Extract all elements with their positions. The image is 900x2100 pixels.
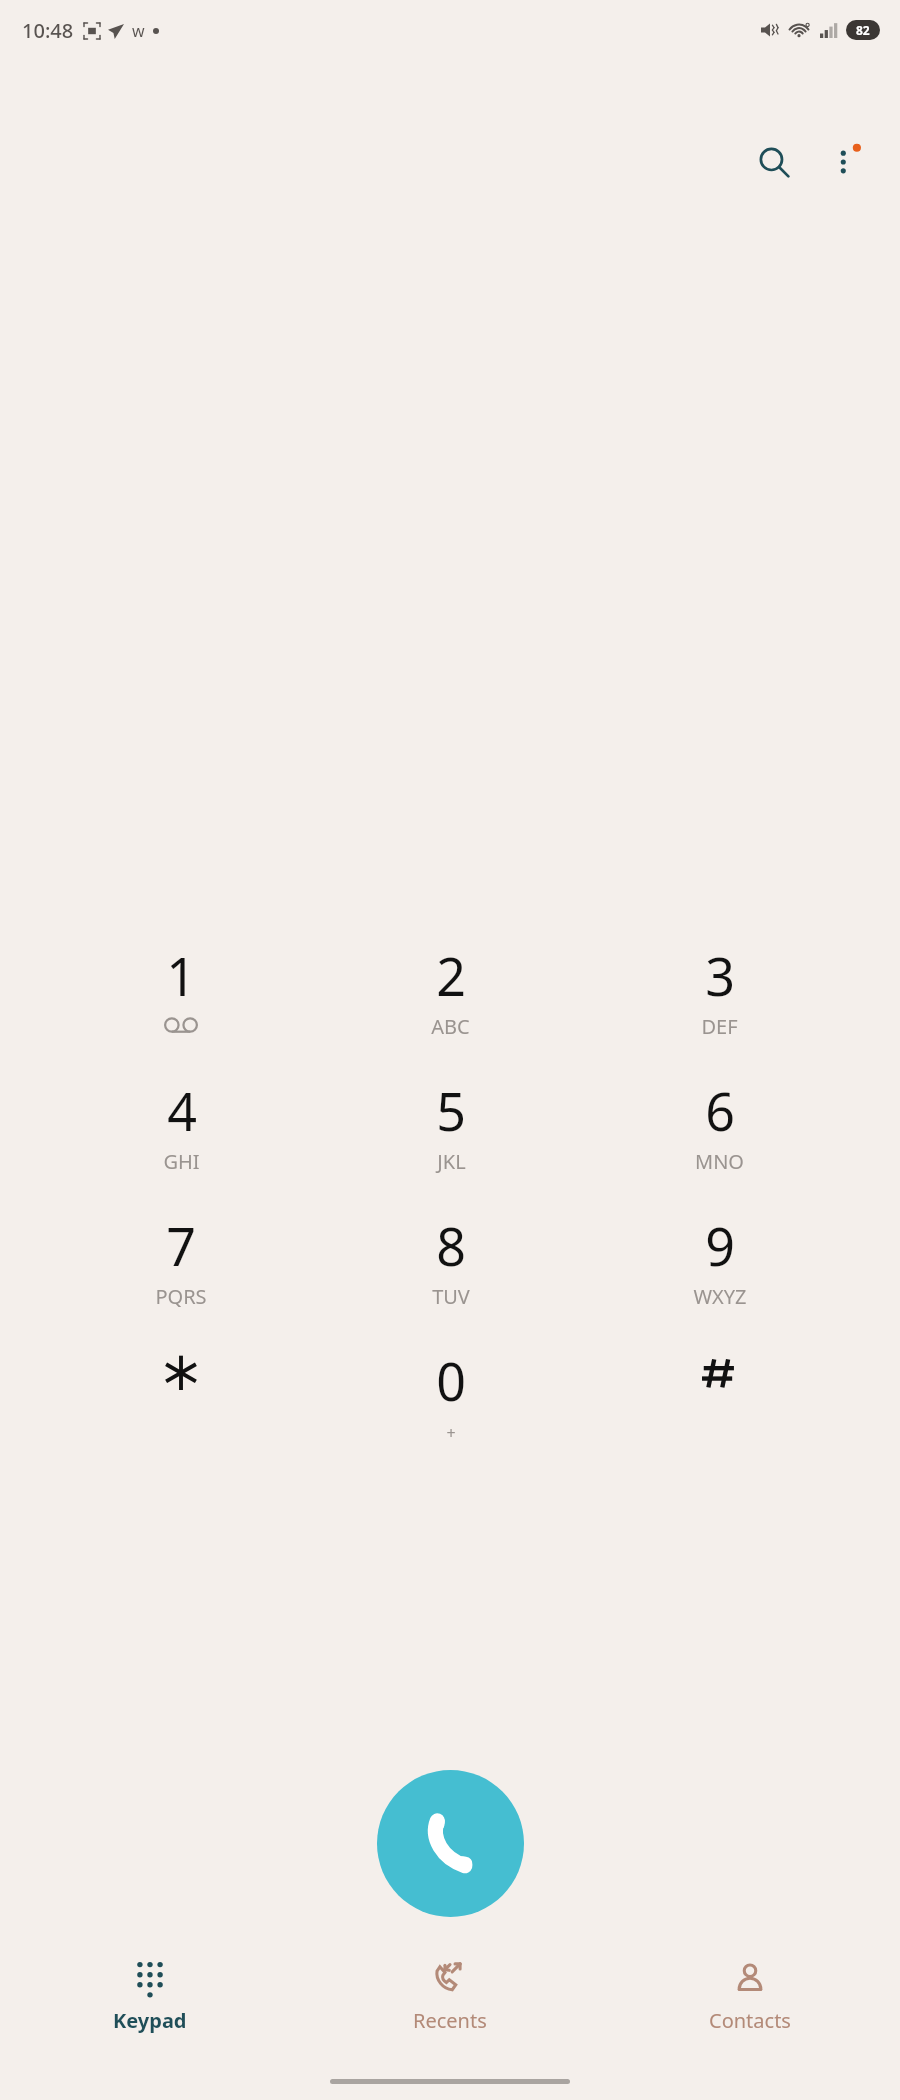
button[interactable] [46,1345,316,1485]
button[interactable]: 8 [316,1210,585,1345]
staticText: JKL [437,1148,466,1175]
staticText: MNO [695,1148,744,1175]
button[interactable]: 0 [316,1345,585,1485]
staticText: w [132,20,145,42]
button[interactable]: Contacts [600,1955,900,2040]
button[interactable]: 4 [46,1075,316,1210]
staticText: 4 [167,1075,197,1146]
staticText: 0 [436,1345,466,1416]
button[interactable]: Search [742,130,806,194]
staticText: 5 [436,1075,466,1146]
button[interactable]: 3 [585,940,854,1075]
button[interactable]: Recents [300,1955,600,2040]
staticText: Recents [413,2007,487,2034]
button[interactable]: 5 [316,1075,585,1210]
staticText: PQRS [155,1283,207,1310]
staticText: 82 [856,22,870,38]
staticText: 3 [705,940,735,1011]
staticText: 8 [436,1210,466,1281]
button[interactable]: 6 [585,1075,854,1210]
staticText: 7 [166,1210,196,1281]
button[interactable]: 7 [46,1210,316,1345]
button[interactable]: 2 [316,940,585,1075]
staticText: 9 [705,1210,735,1281]
staticText: 1 [166,940,196,1011]
staticText: 2 [436,940,466,1011]
button[interactable]: 1 [46,940,316,1075]
staticText: Contacts [709,2007,791,2034]
staticText: Keypad [113,2007,187,2034]
staticText: DEF [701,1013,738,1040]
staticText: 10:48 [22,17,74,44]
button[interactable]: More options [814,130,878,194]
staticText: WXYZ [693,1283,747,1310]
button[interactable] [585,1345,854,1485]
button[interactable]: Keypad [0,1955,300,2040]
staticText: GHI [163,1148,200,1175]
staticText: 6 [705,1075,735,1146]
staticText: TUV [432,1283,470,1310]
staticText: ABC [431,1013,470,1040]
button[interactable]: Call [377,1770,524,1917]
staticText: + [446,1422,456,1444]
button[interactable]: 9 [585,1210,854,1345]
